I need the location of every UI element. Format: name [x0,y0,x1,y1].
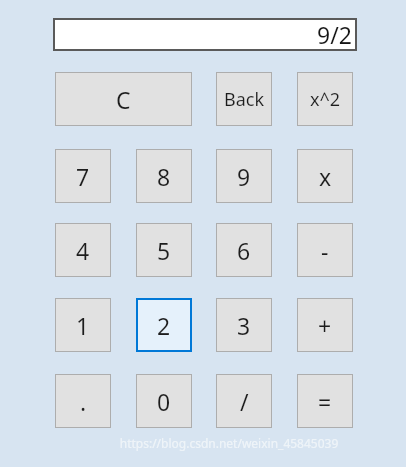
button[interactable]: 0 [136,374,192,428]
staticText: = [318,386,332,417]
button[interactable]: 2 [136,298,192,352]
button[interactable]: C [55,72,192,126]
button[interactable]: 7 [55,149,111,203]
staticText: x^2 [310,87,341,112]
staticText: 8 [157,161,171,192]
button[interactable]: . [55,374,111,428]
button[interactable]: 3 [216,298,272,352]
button[interactable]: = [297,374,353,428]
staticText: - [321,235,329,266]
staticText: 9 [237,161,251,192]
button[interactable]: 4 [55,223,111,277]
staticText: 0 [157,386,171,417]
button[interactable]: Back [216,72,272,126]
button[interactable]: - [297,223,353,277]
staticText: + [318,310,332,341]
button[interactable]: + [297,298,353,352]
button[interactable]: 5 [136,223,192,277]
staticText: / [240,386,249,417]
staticText: Back [224,87,265,112]
staticText: 5 [157,235,171,266]
button[interactable]: 6 [216,223,272,277]
button[interactable]: / [216,374,272,428]
button[interactable]: x^2 [297,72,353,126]
staticText: . [80,386,87,417]
button[interactable]: x [297,149,353,203]
staticText: 3 [237,310,251,341]
staticText: 1 [76,310,90,341]
staticText: x [319,161,332,192]
staticText: 2 [157,310,171,341]
button[interactable]: 9/2 [53,18,357,51]
staticText: 7 [76,161,90,192]
button[interactable]: 9 [216,149,272,203]
staticText: https://blog.csdn.net/weixin_45845039 [52,435,406,451]
staticText: 6 [237,235,251,266]
staticText: 9/2 [317,19,352,50]
button[interactable]: 8 [136,149,192,203]
staticText: 4 [76,235,90,266]
staticText: C [116,84,131,115]
button[interactable]: 1 [55,298,111,352]
